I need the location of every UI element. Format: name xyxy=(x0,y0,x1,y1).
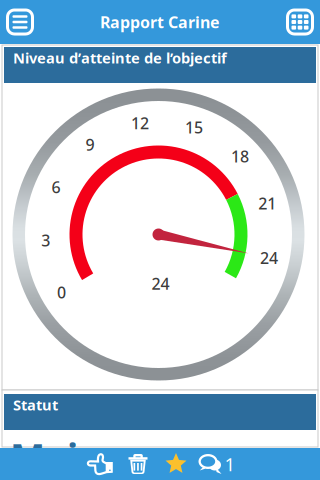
staticText: 18 xyxy=(231,146,249,167)
staticText: 6 xyxy=(51,176,60,198)
button[interactable]: Grid xyxy=(280,0,320,44)
button[interactable]: Delete xyxy=(119,448,157,480)
staticText: 12 xyxy=(131,112,149,134)
staticText: Rapport Carine xyxy=(100,11,220,33)
staticText: 21 xyxy=(258,193,276,214)
staticText: 3 xyxy=(41,230,50,251)
button[interactable]: Favourite xyxy=(157,448,195,480)
staticText: 15 xyxy=(185,117,203,138)
staticText: 0 xyxy=(57,282,66,303)
staticText: 24 xyxy=(260,247,278,268)
button[interactable]: Menu xyxy=(0,0,40,44)
staticText: 1 xyxy=(224,452,235,476)
staticText: 24 xyxy=(151,273,169,294)
staticText: Niveau d’atteinte de l’objectif xyxy=(13,48,227,67)
staticText: Statut xyxy=(13,395,58,414)
button[interactable]: Like xyxy=(81,448,119,480)
button[interactable]: Comments, 1 xyxy=(195,448,239,480)
staticText: 9 xyxy=(85,134,94,155)
staticText: Mais xyxy=(10,432,97,480)
